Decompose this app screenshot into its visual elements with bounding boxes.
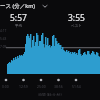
staticText: ース (分／km) (0, 2, 35, 10)
staticText: 時間 (時:分:秒) (31, 92, 69, 97)
staticText: 5:57 (10, 12, 27, 24)
staticText: ベスト (71, 24, 83, 29)
staticText: 4:17 (0, 29, 7, 33)
staticText: 5:43 (0, 37, 7, 41)
staticText: 51:54 (72, 84, 81, 89)
staticText: 平均 (15, 24, 23, 29)
staticText: 12:59 (19, 84, 28, 89)
staticText: 25:00 (37, 84, 46, 89)
staticText: 3:55 (68, 12, 85, 24)
staticText: 7:09 (0, 45, 7, 49)
button[interactable]: Expand (40, 1, 49, 10)
staticText: 38:56 (54, 84, 63, 89)
staticText: 0:00 (2, 84, 9, 89)
